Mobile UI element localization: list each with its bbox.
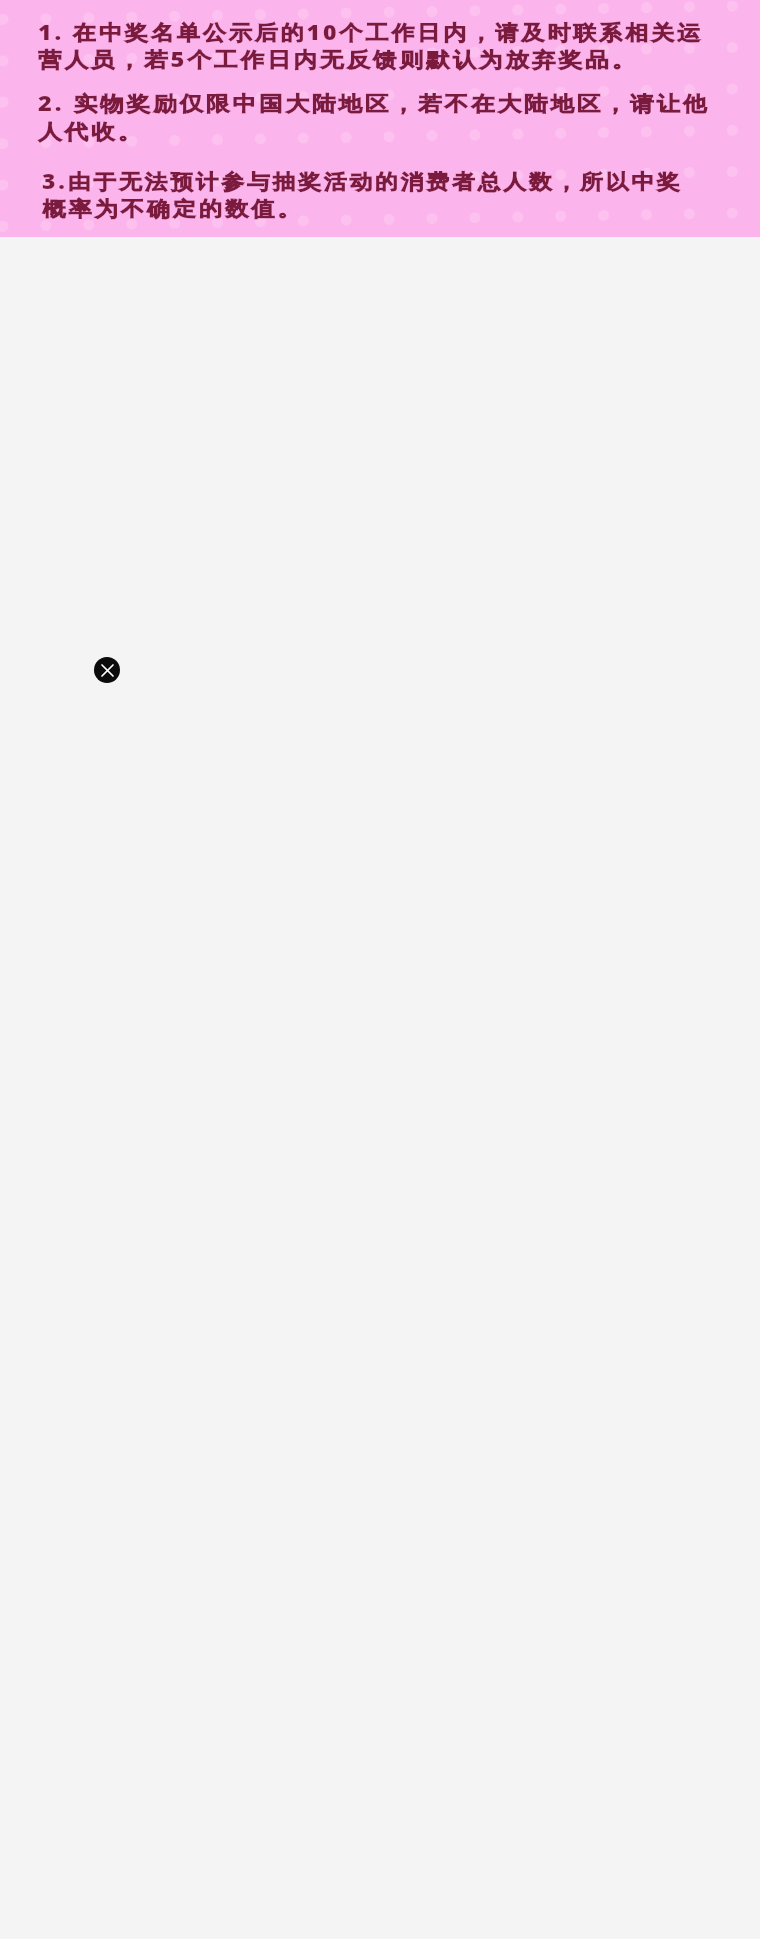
staticText: 营人员，若5个工作日内无反馈则默认为放弃奖品。 [38,45,638,73]
staticText: 人代收。 [38,119,145,145]
staticText: 概率为不确定的数值。 [41,196,302,222]
staticText: 3.由于无法预计参与抽奖活动的消费者总人数，所以中奖 [42,167,683,195]
staticText: 2. 实物奖励仅限中国大陆地区，若不在大陆地区，请让他 [38,89,710,117]
staticText: 1. 在中奖名单公示后的10个工作日内，请及时联系相关运 [38,18,703,46]
button[interactable]: Close [94,657,120,683]
